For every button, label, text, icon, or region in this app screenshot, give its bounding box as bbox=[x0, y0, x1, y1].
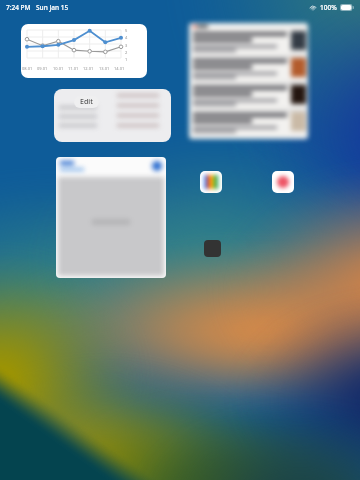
staticText: 100% bbox=[320, 3, 337, 12]
button[interactable]: Photos app bbox=[272, 171, 294, 193]
staticText: Edit bbox=[80, 97, 93, 107]
button[interactable]: 08.01 bbox=[21, 24, 147, 78]
staticText: 14.01 bbox=[114, 66, 125, 71]
staticText: 3 bbox=[125, 43, 128, 48]
staticText: Sun Jan 15 bbox=[36, 3, 69, 12]
staticText: 08.01 bbox=[22, 66, 33, 71]
staticText: 4 bbox=[125, 35, 128, 40]
staticText: 2 bbox=[125, 50, 128, 55]
staticText: 11.01 bbox=[68, 66, 79, 71]
staticText: 13.01 bbox=[99, 66, 110, 71]
staticText: 10.01 bbox=[53, 66, 64, 71]
button[interactable]: Edit bbox=[74, 96, 99, 108]
staticText: 1 bbox=[125, 57, 128, 62]
staticText: 12.01 bbox=[83, 66, 94, 71]
staticText: 5 bbox=[125, 28, 128, 33]
staticText: 7:24 PM bbox=[6, 3, 31, 12]
button[interactable]: Settings app bbox=[204, 240, 221, 257]
button[interactable] bbox=[189, 23, 308, 139]
staticText: 09.01 bbox=[37, 66, 48, 71]
button[interactable]: Google app bbox=[200, 171, 222, 193]
